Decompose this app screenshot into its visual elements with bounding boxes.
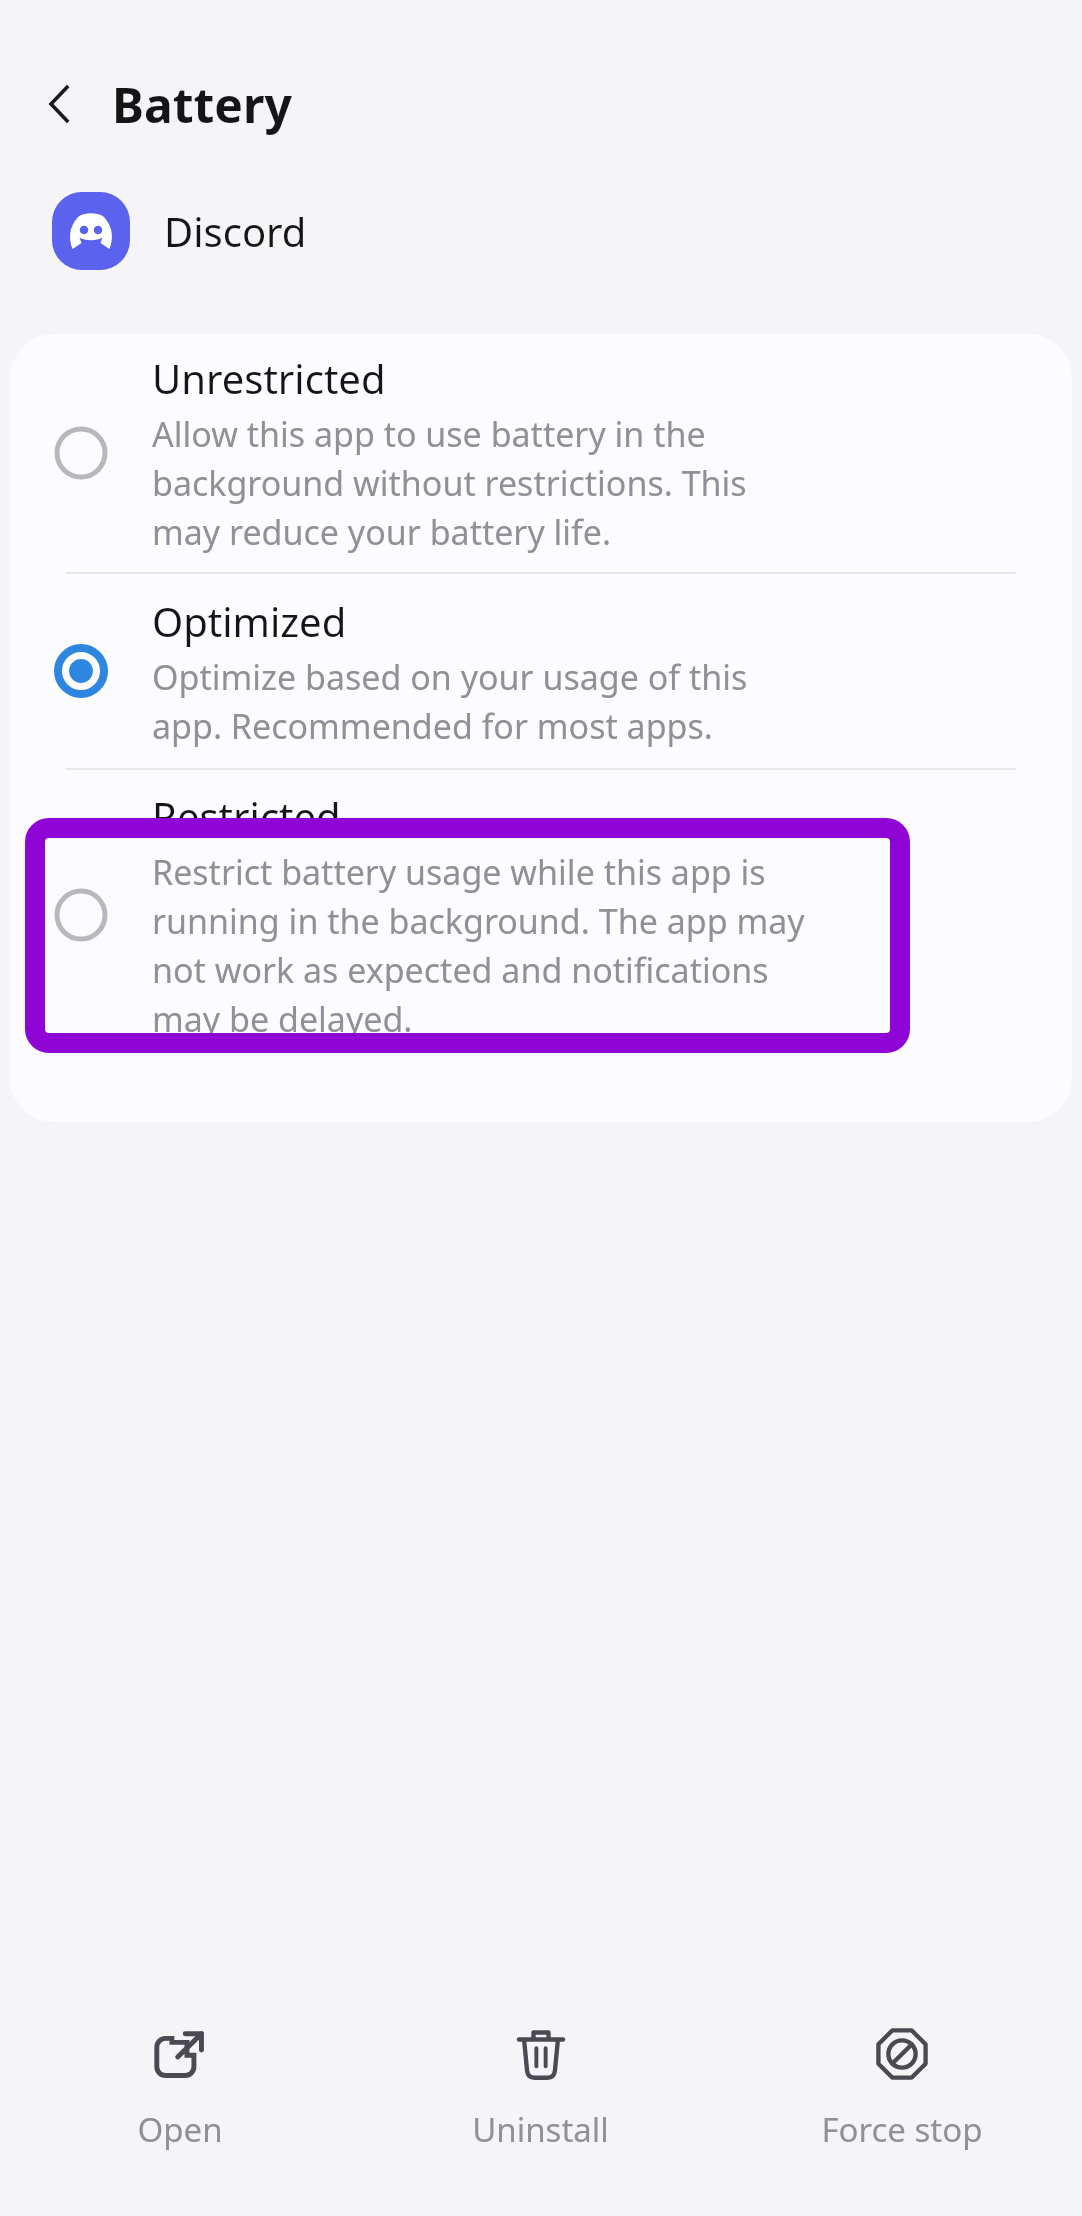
staticText: Unrestricted xyxy=(152,351,386,405)
staticText: Restricted xyxy=(152,789,341,843)
button[interactable]: Back xyxy=(26,69,96,139)
button[interactable]: Unrestricted xyxy=(10,334,1072,572)
staticText: Optimize based on your usage of this app… xyxy=(152,654,748,749)
staticText: Discord xyxy=(164,204,307,258)
staticText: Force stop xyxy=(821,2107,983,2152)
staticText: Battery xyxy=(112,72,292,137)
button[interactable]: Uninstall xyxy=(360,2008,721,2168)
staticText: Open xyxy=(137,2107,223,2152)
staticText: Restrict battery usage while this app is… xyxy=(152,849,805,1042)
button[interactable]: Optimized xyxy=(10,574,1072,768)
staticText: Uninstall xyxy=(472,2107,609,2152)
button[interactable]: Restricted xyxy=(10,770,1072,1060)
staticText: Allow this app to use battery in the bac… xyxy=(152,411,747,555)
button[interactable]: Open xyxy=(0,2008,360,2168)
staticText: Optimized xyxy=(152,594,347,648)
button[interactable]: Force stop xyxy=(721,2008,1082,2168)
